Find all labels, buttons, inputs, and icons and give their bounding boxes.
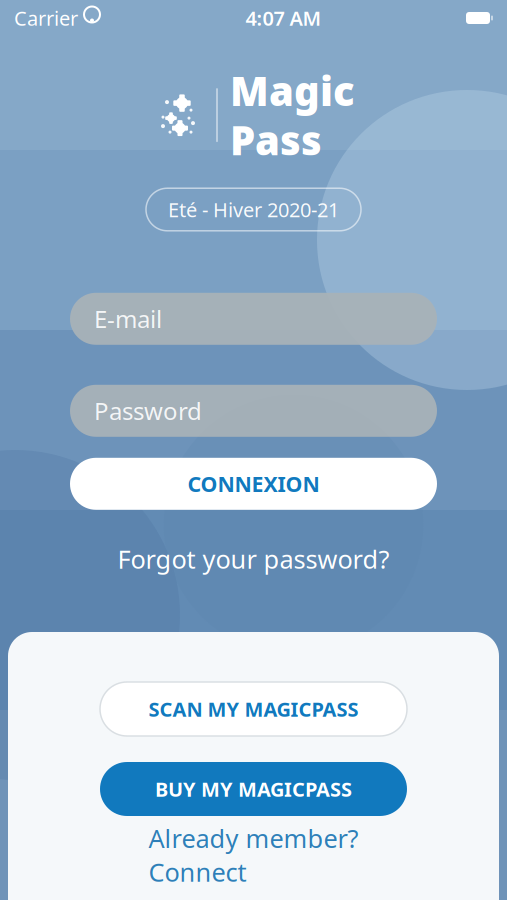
staticText: CONNEXION bbox=[187, 470, 319, 498]
staticText: E-mail bbox=[94, 303, 162, 335]
staticText: Forgot your password? bbox=[117, 542, 389, 576]
button[interactable]: BUY MY MAGICPASS bbox=[100, 762, 407, 816]
button[interactable]: Already member? Connect bbox=[100, 840, 407, 870]
button[interactable]: CONNEXION bbox=[70, 458, 437, 510]
button[interactable]: SCAN MY MAGICPASS bbox=[100, 682, 407, 736]
staticText: Already member? Connect bbox=[148, 821, 358, 889]
button[interactable]: Forgot your password? bbox=[70, 544, 437, 574]
staticText: BUY MY MAGICPASS bbox=[155, 776, 352, 802]
staticText: Password bbox=[94, 395, 202, 427]
staticText: 4:07 AM bbox=[245, 5, 321, 31]
staticText: Carrier bbox=[14, 5, 78, 31]
staticText: Pass bbox=[230, 113, 322, 166]
staticText: Eté - Hiver 2020-21 bbox=[168, 196, 339, 223]
staticText: SCAN MY MAGICPASS bbox=[148, 696, 358, 722]
staticText: Magic bbox=[230, 64, 355, 117]
button[interactable]: Eté - Hiver 2020-21 bbox=[146, 188, 361, 231]
button[interactable]: Password bbox=[70, 385, 437, 437]
button[interactable]: E-mail bbox=[70, 293, 437, 345]
